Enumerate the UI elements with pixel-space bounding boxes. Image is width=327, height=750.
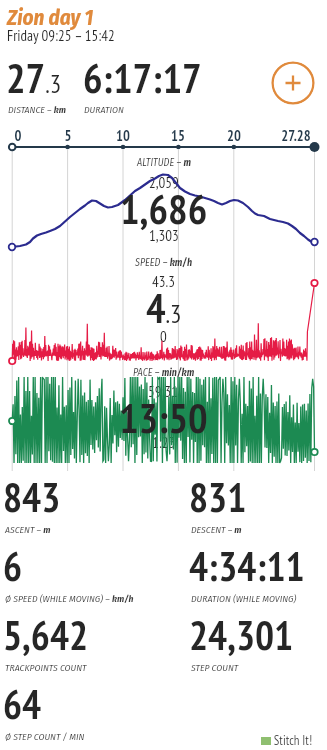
button[interactable]: Add activity — [271, 61, 315, 105]
staticText: DURATION (WHILE MOVING) — [191, 593, 297, 605]
staticText: SPEED – km/h — [135, 257, 193, 269]
staticText: 4:34:11 — [189, 540, 305, 592]
staticText: 15 — [148, 126, 208, 144]
staticText: 0 — [0, 126, 48, 144]
staticText: Ø STEP COUNT / MIN — [5, 731, 85, 743]
staticText: 1,686 — [120, 182, 208, 235]
staticText: 1:23 — [152, 433, 176, 452]
staticText: 24,301 — [189, 609, 294, 661]
staticText: DURATION — [84, 104, 124, 116]
staticText: 6 — [3, 540, 23, 592]
staticText: TRACKPOINTS COUNT — [5, 662, 87, 674]
staticText: 831 — [189, 471, 247, 523]
staticText: Friday 09:25 – 15:42 — [7, 26, 115, 45]
staticText: 2,059 — [149, 173, 179, 192]
staticText: 27.28 — [266, 126, 326, 144]
staticText: PACE – min/km — [133, 367, 195, 379]
staticText: 59:31 — [148, 382, 179, 401]
staticText: ASCENT – m — [5, 524, 51, 536]
staticText: 27.3 — [6, 51, 62, 104]
staticText: 20 — [204, 126, 264, 144]
staticText: DESCENT – m — [191, 524, 242, 536]
staticText: DISTANCE – km — [8, 104, 66, 116]
staticText: 843 — [3, 471, 61, 523]
staticText: Stitch It! — [271, 732, 313, 749]
staticText: 10 — [93, 126, 153, 144]
staticText: 4.3 — [146, 281, 182, 334]
staticText: Zion day 1 — [7, 5, 94, 30]
staticText: 0 — [160, 327, 167, 346]
staticText: 64 — [3, 678, 42, 730]
staticText: 13:50 — [119, 391, 208, 444]
staticText: 1,303 — [149, 226, 179, 245]
staticText: ALTITUDE – m — [137, 157, 191, 169]
staticText: 5,642 — [3, 609, 89, 661]
staticText: 6:17:17 — [83, 51, 202, 104]
staticText: STEP COUNT — [191, 662, 239, 674]
staticText: 5 — [38, 126, 98, 144]
staticText: Ø SPEED (WHILE MOVING) – km/h — [5, 593, 134, 605]
staticText: 43.3 — [152, 272, 175, 291]
